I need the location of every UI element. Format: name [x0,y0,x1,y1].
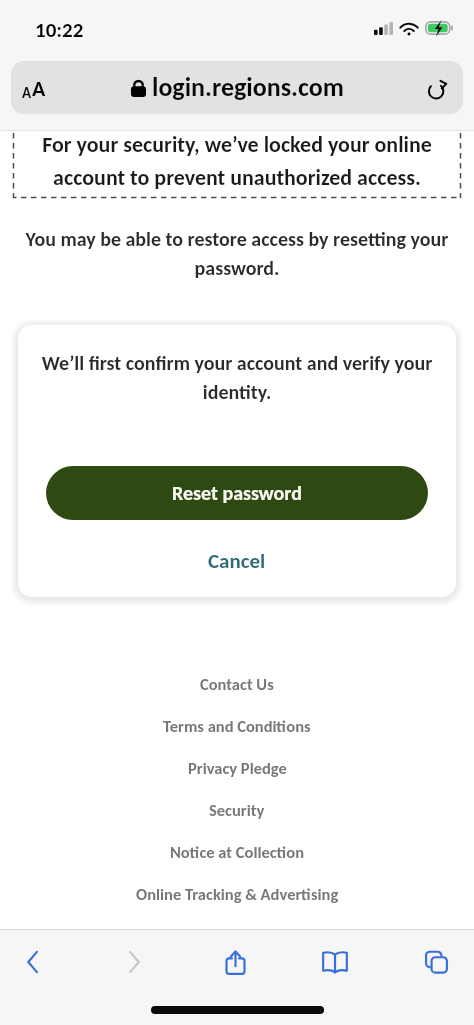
staticText: You may be able to restore access by res… [24,227,450,280]
button[interactable]: Page settings [12,65,56,111]
staticText: login.regions.com [152,71,344,103]
button[interactable]: Reset password [46,466,428,520]
staticText: Notice at Collection [170,842,305,862]
button[interactable]: Notice at Collection [0,831,474,873]
button[interactable]: Security [0,789,474,831]
button[interactable]: Privacy Pledge [0,747,474,789]
staticText: Reset password [172,481,302,505]
staticText: Privacy Pledge [188,758,287,778]
button[interactable]: Bookmarks [311,930,359,994]
button[interactable]: Cancel [40,548,434,574]
staticText: 10:22 [35,17,84,43]
staticText: For your security, we’ve locked your onl… [21,131,453,191]
staticText: We’ll first confirm your account and ver… [40,351,434,404]
staticText: A [22,84,32,102]
button[interactable]: Contact Us [0,663,474,705]
button[interactable]: Tabs [412,930,460,994]
button[interactable]: Online Tracking & Advertising [0,873,474,915]
button[interactable]: Forward [110,930,158,994]
button[interactable]: Page settings [11,61,463,114]
button[interactable]: Back [9,930,57,994]
button[interactable]: Reload [419,70,455,106]
staticText: Security [209,800,265,820]
staticText: Online Tracking & Advertising [136,884,339,904]
button[interactable]: Share [211,930,259,994]
staticText: Contact Us [200,674,274,694]
staticText: A [32,75,46,102]
staticText: Cancel [208,548,266,574]
button[interactable]: Terms and Conditions [0,705,474,747]
staticText: Terms and Conditions [163,716,311,736]
